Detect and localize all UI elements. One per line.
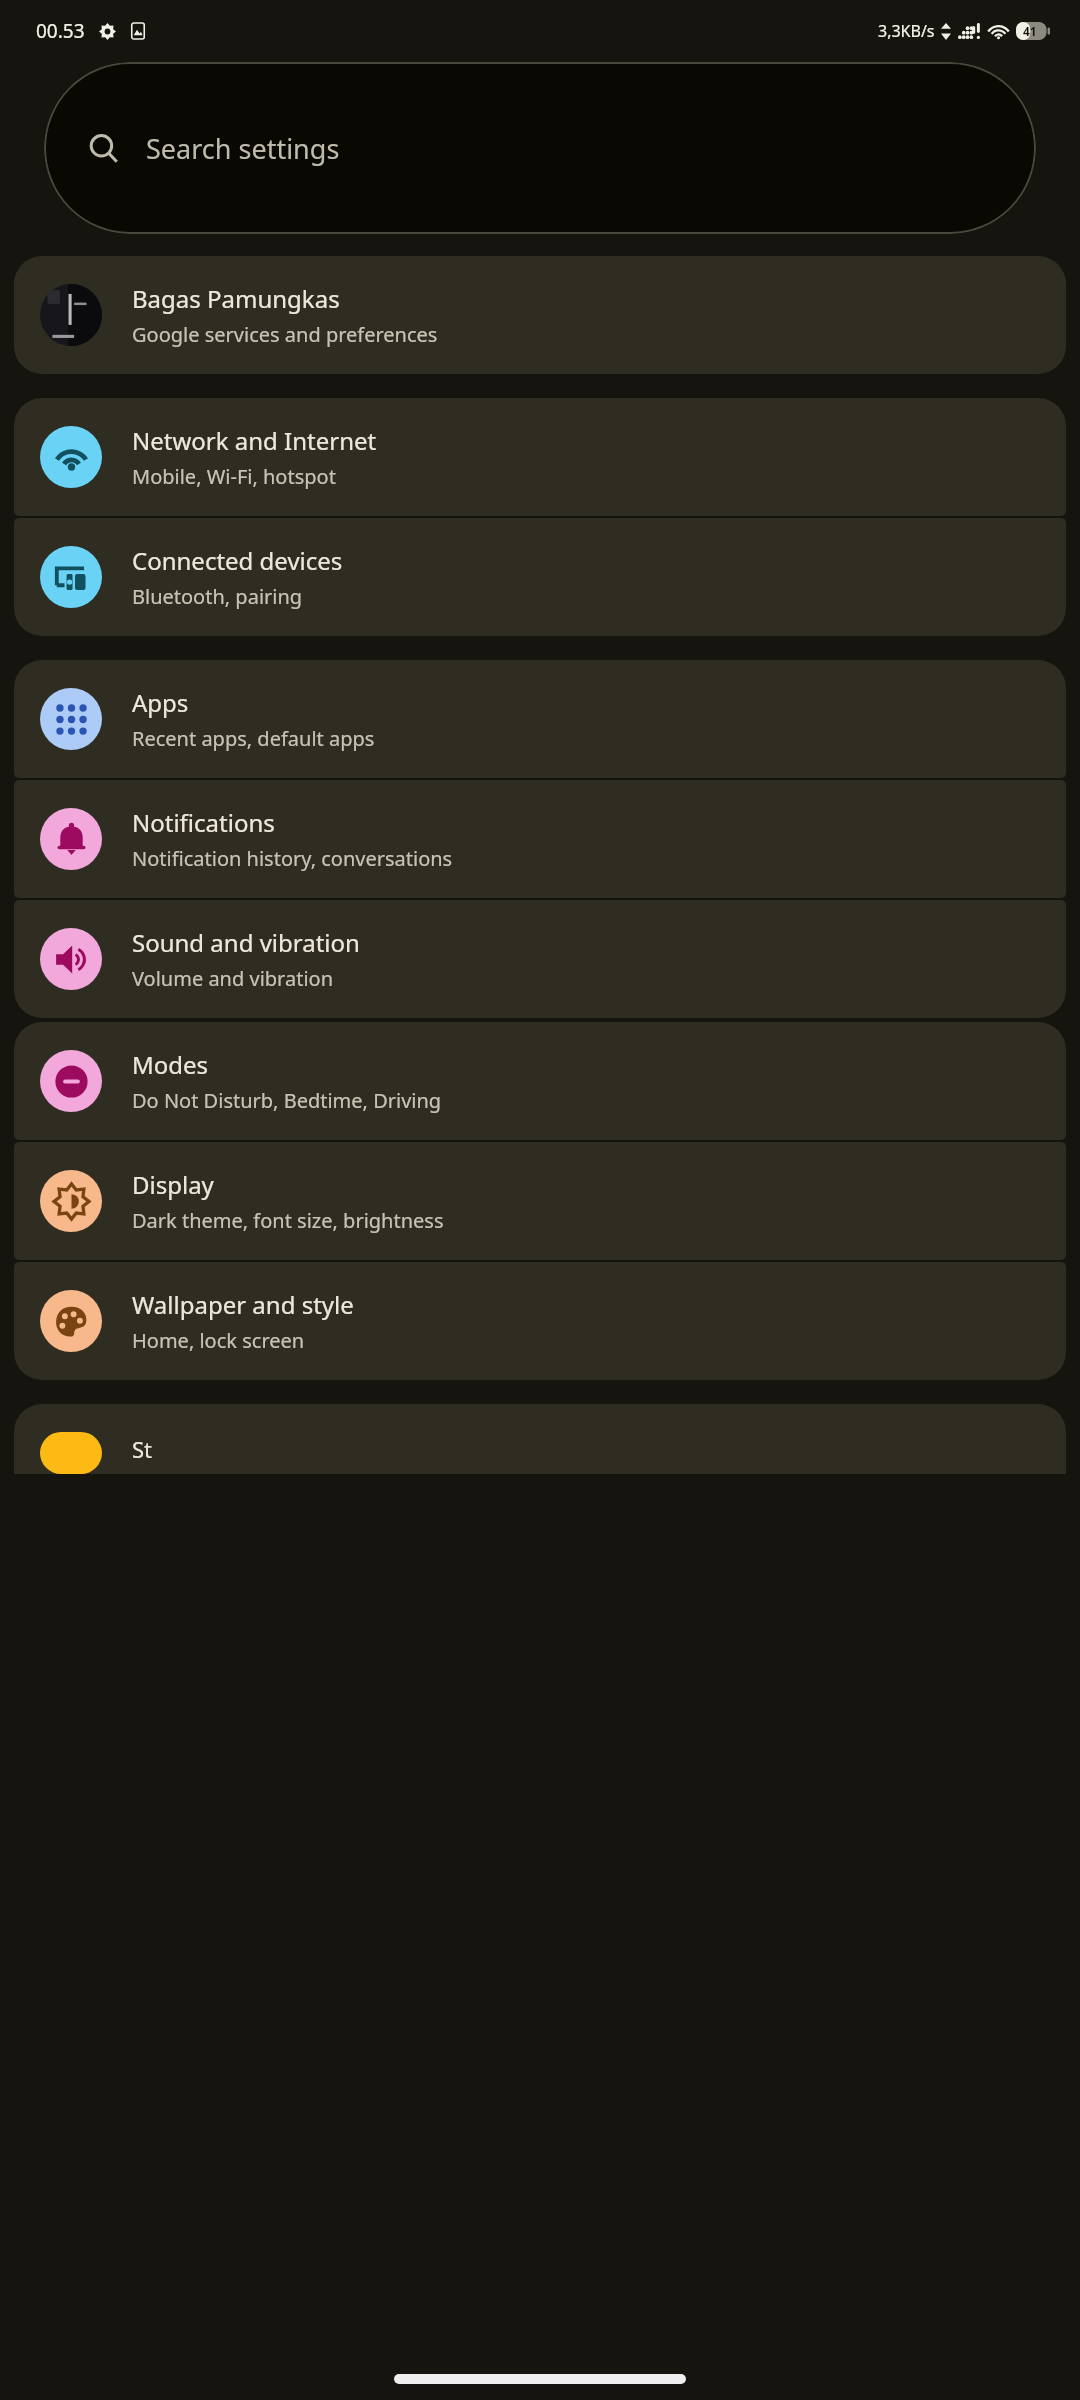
button[interactable]: Display [14, 1142, 1066, 1260]
staticText: Google services and preferences [132, 321, 438, 348]
button[interactable]: Sound and vibration [14, 900, 1066, 1018]
staticText: Notification history, conversations [132, 845, 453, 872]
button[interactable]: Connected devices [14, 518, 1066, 636]
staticText: Network and Internet [132, 424, 377, 457]
staticText: Bagas Pamungkas [132, 282, 340, 315]
staticText: Home, lock screen [132, 1327, 305, 1354]
button[interactable]: Network and Internet [14, 398, 1066, 516]
staticText: Volume and vibration [132, 965, 334, 992]
staticText: Sound and vibration [132, 926, 360, 959]
button[interactable]: Modes [14, 1022, 1066, 1140]
staticText: Notifications [132, 806, 275, 839]
staticText: Apps [132, 686, 189, 719]
button[interactable]: St [14, 1404, 1066, 1474]
staticText: Display [132, 1168, 214, 1201]
staticText: Search settings [146, 130, 340, 167]
staticText: Mobile, Wi-Fi, hotspot [132, 463, 336, 490]
staticText: Connected devices [132, 544, 343, 577]
staticText: Recent apps, default apps [132, 725, 375, 752]
staticText: Dark theme, font size, brightness [132, 1207, 444, 1234]
staticText: 00.53 [36, 18, 85, 44]
button[interactable]: Wallpaper and style [14, 1262, 1066, 1380]
staticText: Modes [132, 1048, 209, 1081]
staticText: St [132, 1434, 153, 1464]
button[interactable]: Bagas Pamungkas [14, 256, 1066, 374]
staticText: Wallpaper and style [132, 1288, 354, 1321]
button[interactable]: Notifications [14, 780, 1066, 898]
staticText: 41 [1023, 23, 1037, 39]
staticText: Bluetooth, pairing [132, 583, 303, 610]
staticText: Do Not Disturb, Bedtime, Driving [132, 1087, 442, 1114]
button[interactable]: Apps [14, 660, 1066, 778]
staticText: 3,3KB/s [878, 20, 935, 42]
button[interactable]: Search settings [44, 62, 1036, 234]
